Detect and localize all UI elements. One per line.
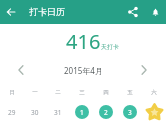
button[interactable]: 29 [0, 101, 23, 123]
staticText: 一 [32, 89, 38, 96]
button[interactable]: Notifications [146, 3, 164, 21]
button[interactable]: 30 [23, 101, 46, 123]
staticText: 1 [80, 108, 84, 117]
staticText: 30 [31, 108, 39, 117]
staticText: 3 [128, 108, 132, 117]
button[interactable] [142, 101, 166, 123]
staticText: 416 [66, 28, 101, 55]
button[interactable]: Next month [134, 61, 153, 79]
staticText: 31 [54, 108, 62, 117]
button[interactable]: 3 [118, 101, 142, 123]
staticText: 四 [103, 89, 109, 96]
staticText: 六 [151, 89, 157, 96]
staticText: 天打卡 [101, 43, 119, 51]
staticText: 2 [104, 108, 108, 117]
staticText: 五 [127, 89, 133, 96]
button[interactable]: Share [124, 3, 142, 21]
staticText: 日 [9, 89, 15, 96]
staticText: 二 [55, 89, 61, 96]
button[interactable]: 31 [46, 101, 70, 123]
button[interactable]: Previous month [11, 61, 30, 79]
button[interactable]: 1 [70, 101, 94, 123]
button[interactable]: 2 [94, 101, 118, 123]
staticText: 打卡日历 [29, 6, 65, 17]
staticText: 29 [8, 108, 16, 117]
staticText: 三 [79, 89, 85, 96]
button[interactable]: Back [2, 3, 20, 21]
button[interactable]: 2015年4月 [64, 65, 103, 76]
